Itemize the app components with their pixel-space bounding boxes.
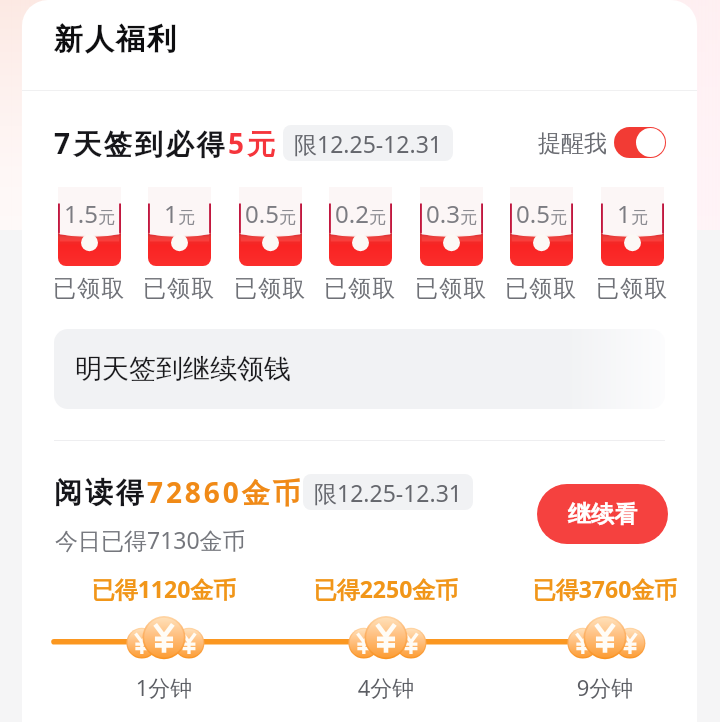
- staticText: 提醒我: [538, 129, 607, 158]
- button[interactable]: 0.5: [230, 187, 311, 303]
- staticText: 0.2: [335, 197, 369, 230]
- staticText: 继续看: [568, 500, 637, 529]
- button[interactable]: 1: [592, 187, 673, 303]
- staticText: 1: [617, 197, 631, 230]
- staticText: 已领取: [415, 274, 488, 303]
- staticText: 明天签到继续领钱: [75, 352, 291, 386]
- button[interactable]: 1: [139, 187, 220, 303]
- staticText: 已领取: [596, 274, 669, 303]
- button[interactable]: 0.3: [411, 187, 492, 303]
- staticText: 9分钟: [515, 672, 695, 702]
- staticText: 元: [550, 207, 567, 228]
- staticText: 元: [279, 207, 296, 228]
- staticText: 元: [460, 207, 477, 228]
- staticText: 已领取: [324, 274, 397, 303]
- staticText: 0.3: [426, 197, 460, 230]
- button[interactable]: 明天签到继续领钱: [54, 329, 665, 409]
- staticText: 0.5: [245, 197, 279, 230]
- staticText: 限12.25-12.31: [314, 477, 462, 508]
- staticText: 阅读得: [54, 475, 147, 510]
- staticText: 元: [369, 207, 386, 228]
- staticText: 已领取: [53, 274, 126, 303]
- staticText: 元: [178, 207, 195, 228]
- staticText: 4分钟: [296, 672, 476, 702]
- staticText: 已得1120金币: [74, 573, 254, 604]
- staticText: 1分钟: [74, 672, 254, 702]
- button[interactable]: 1.5: [49, 187, 130, 303]
- staticText: 元: [631, 207, 648, 228]
- staticText: 已得3760金币: [515, 573, 695, 604]
- staticText: 已领取: [143, 274, 216, 303]
- button[interactable]: 继续看: [537, 484, 668, 544]
- staticText: 7天签到必得: [54, 124, 228, 162]
- button[interactable]: 0.2: [320, 187, 401, 303]
- staticText: 已得2250金币: [296, 573, 476, 604]
- button[interactable]: 提醒我 开关: [614, 127, 666, 158]
- staticText: 1: [164, 197, 178, 230]
- staticText: 限12.25-12.31: [294, 128, 442, 159]
- staticText: 5元: [228, 124, 278, 162]
- staticText: 新人福利: [53, 21, 177, 58]
- staticText: 已领取: [234, 274, 307, 303]
- staticText: 1.5: [64, 197, 98, 230]
- staticText: 已领取: [505, 274, 578, 303]
- staticText: 72860金币: [147, 473, 304, 511]
- staticText: 今日已得7130金币: [55, 524, 246, 555]
- button[interactable]: 0.5: [501, 187, 582, 303]
- staticText: 元: [98, 207, 115, 228]
- staticText: 0.5: [516, 197, 550, 230]
